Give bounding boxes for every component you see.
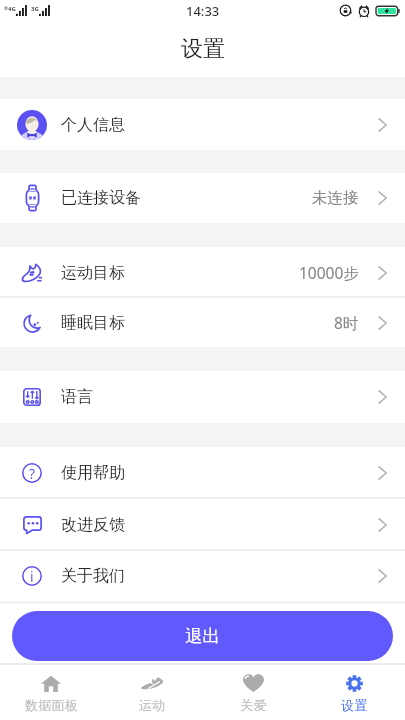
button[interactable]: 个人信息 bbox=[0, 99, 405, 150]
staticText: 关于我们 bbox=[61, 566, 125, 586]
other: 关爱 bbox=[243, 674, 264, 692]
staticText: 14:33 bbox=[186, 2, 220, 20]
staticText: 语言 bbox=[61, 387, 93, 407]
button[interactable]: i bbox=[0, 551, 405, 601]
staticText: 未连接 bbox=[312, 188, 359, 208]
staticText: 设置 bbox=[341, 697, 368, 714]
staticText: 8时 bbox=[334, 312, 359, 333]
button[interactable]: 退出 bbox=[12, 611, 393, 661]
other: 运动 bbox=[141, 677, 164, 690]
button[interactable]: 睡眠目标 bbox=[0, 298, 405, 347]
button[interactable]: 运动 bbox=[102, 665, 203, 720]
staticText: 数据面板 bbox=[25, 697, 78, 714]
staticText: 10000步 bbox=[299, 262, 359, 283]
staticText: i bbox=[30, 567, 34, 586]
button[interactable]: 数据面板 bbox=[0, 665, 102, 720]
button[interactable]: ? bbox=[0, 447, 405, 499]
button[interactable]: 设置 bbox=[304, 665, 405, 720]
staticText: 运动目标 bbox=[61, 263, 125, 283]
staticText: 4G bbox=[8, 5, 16, 13]
button[interactable]: 已连接设备 bbox=[0, 173, 405, 223]
button[interactable]: 改进反馈 bbox=[0, 499, 405, 551]
button[interactable]: 运动目标 bbox=[0, 247, 405, 298]
button[interactable]: 关爱 bbox=[203, 665, 304, 720]
button[interactable]: 语言 bbox=[0, 371, 405, 423]
other: 设置 bbox=[346, 675, 363, 692]
staticText: 运动 bbox=[139, 697, 166, 714]
staticText: 睡眠目标 bbox=[61, 313, 125, 333]
staticText: 退出 bbox=[185, 625, 220, 647]
staticText: 个人信息 bbox=[61, 115, 125, 135]
staticText: ? bbox=[29, 464, 36, 483]
staticText: 改进反馈 bbox=[61, 515, 125, 535]
staticText: 3G bbox=[31, 5, 39, 13]
staticText: 关爱 bbox=[240, 697, 267, 714]
staticText: 已连接设备 bbox=[61, 188, 141, 208]
staticText: 设置 bbox=[181, 35, 225, 63]
other: 数据面板 bbox=[41, 675, 61, 692]
staticText: 使用帮助 bbox=[61, 463, 125, 483]
